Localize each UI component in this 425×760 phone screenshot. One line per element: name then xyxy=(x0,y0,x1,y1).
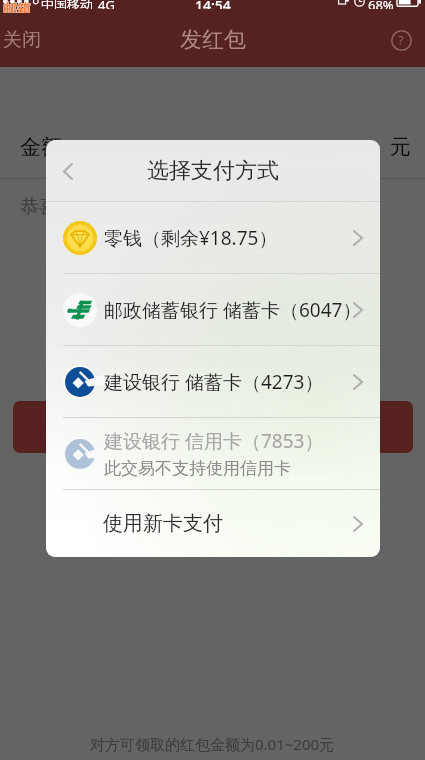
staticText: 68% xyxy=(368,0,394,9)
staticText: 对方可领取的红包金额为0.01~200元 xyxy=(90,734,335,754)
staticText: 塞钱进红包 xyxy=(163,415,263,440)
button[interactable]: 塞钱进红包 xyxy=(13,401,413,453)
staticText: 此交易不支持使用信用卡 xyxy=(104,458,291,479)
staticText: 建设银行 信用卡（7853） xyxy=(104,428,324,454)
staticText: 邮政储蓄银行 储蓄卡（6047） xyxy=(104,297,362,323)
button[interactable]: 建设银行 储蓄卡（4273） xyxy=(46,346,380,417)
button[interactable]: Help xyxy=(383,22,419,58)
staticText: 中国移动 xyxy=(41,0,93,9)
button[interactable]: 关闭 xyxy=(0,15,44,65)
button[interactable]: 使用新卡支付 xyxy=(46,490,380,557)
staticText: 建设银行 储蓄卡（4273） xyxy=(104,369,324,395)
staticText: ? xyxy=(398,31,404,49)
staticText: 零钱（剩余¥18.75） xyxy=(104,225,278,251)
staticText: 14:54 xyxy=(195,0,231,9)
staticText: 选择支付方式 xyxy=(147,157,279,185)
staticText: 恭喜发财，大吉大利 xyxy=(20,195,191,219)
staticText: 邮箱 xyxy=(3,1,31,14)
staticText: 4G xyxy=(98,0,115,9)
button[interactable]: 邮政储蓄银行 储蓄卡（6047） xyxy=(46,274,380,345)
staticText: 关闭 xyxy=(3,28,41,52)
button[interactable]: 零钱（剩余¥18.75） xyxy=(46,202,380,273)
staticText: 元 xyxy=(390,134,411,160)
staticText: 使用新卡支付 xyxy=(103,511,223,536)
button[interactable]: Back xyxy=(51,154,85,188)
staticText: 金额 xyxy=(20,134,62,160)
staticText: 邮箱 xyxy=(3,1,31,14)
staticText: 发红包 xyxy=(180,26,246,54)
